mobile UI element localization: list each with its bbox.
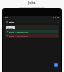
staticText: Ready • periodic 15m bbox=[9, 31, 28, 33]
staticText: scheduled work & background tasks bbox=[19, 6, 45, 8]
button[interactable]: Failed • retry backoff bbox=[6, 34, 58, 37]
staticText: Failed • retry backoff bbox=[9, 35, 28, 37]
button[interactable]: Ready • periodic 15m bbox=[6, 30, 58, 33]
button[interactable]: Menu bbox=[5, 20, 8, 23]
staticText: Jobs bbox=[28, 0, 36, 5]
button[interactable]: Add job bbox=[54, 63, 58, 67]
button[interactable]: JobInfo bbox=[5, 25, 59, 38]
button[interactable]: More options bbox=[56, 20, 59, 23]
staticText: Jobs bbox=[9, 20, 14, 23]
staticText: JobInfo bbox=[7, 27, 14, 29]
